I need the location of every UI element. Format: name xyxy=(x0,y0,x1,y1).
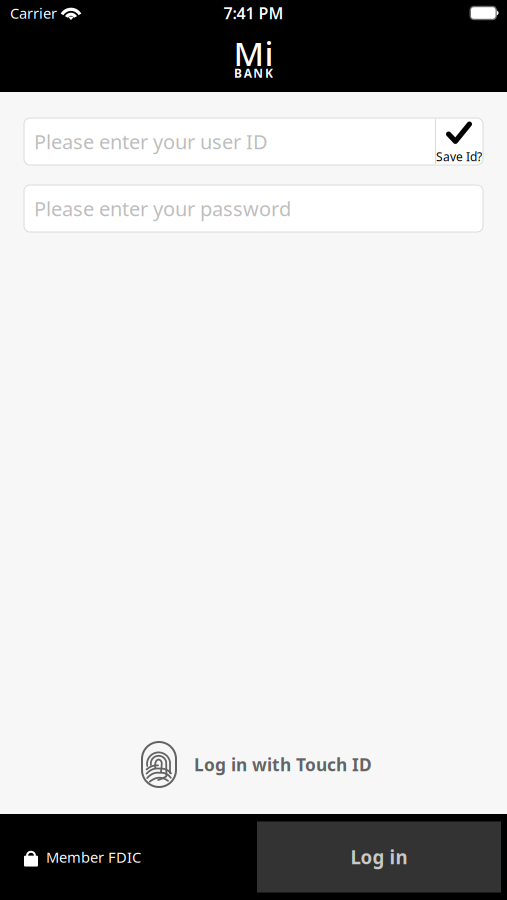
staticText: K xyxy=(265,65,273,81)
staticText: Carrier xyxy=(10,3,57,23)
staticText: Log in with Touch ID xyxy=(194,753,372,776)
staticText: Please enter your password xyxy=(34,195,291,222)
staticText: B xyxy=(234,65,242,81)
staticText: Mi xyxy=(233,31,273,75)
staticText: N xyxy=(253,65,263,81)
staticText: Log in xyxy=(350,845,407,869)
button[interactable]: Log in xyxy=(257,821,501,892)
staticText: Please enter your user ID xyxy=(34,128,268,155)
staticText: 7:41 PM xyxy=(223,2,283,24)
staticText: A xyxy=(244,65,252,81)
button[interactable]: Save Id? xyxy=(435,119,483,164)
staticText: Member FDIC xyxy=(46,847,141,867)
staticText: Save Id? xyxy=(436,148,482,164)
button[interactable]: Log in with Touch ID xyxy=(135,741,372,788)
